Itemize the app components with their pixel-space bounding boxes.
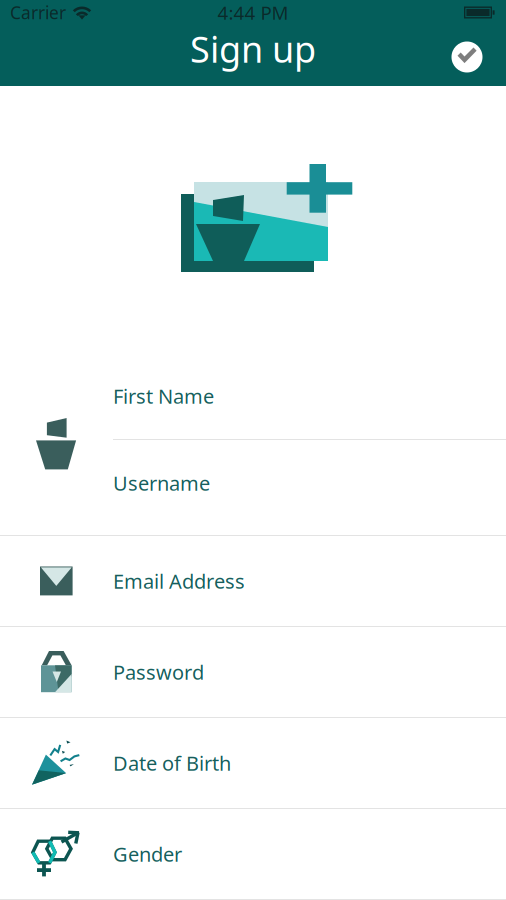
staticText: Gender bbox=[113, 841, 182, 867]
staticText: 4:44 PM bbox=[217, 0, 288, 25]
button[interactable]: Confirm sign up bbox=[445, 35, 489, 79]
staticText: Username bbox=[113, 470, 210, 496]
staticText: Date of Birth bbox=[113, 750, 231, 776]
button[interactable]: Password bbox=[0, 627, 506, 717]
button[interactable]: Email Address bbox=[0, 536, 506, 626]
button[interactable]: First Name bbox=[113, 353, 506, 439]
staticText: Email Address bbox=[113, 568, 245, 594]
staticText: Sign up bbox=[190, 25, 316, 73]
staticText: Password bbox=[113, 659, 204, 685]
button[interactable]: Username bbox=[113, 440, 506, 535]
staticText: Carrier bbox=[10, 1, 66, 24]
button[interactable]: Date of Birth bbox=[0, 718, 506, 808]
staticText: First Name bbox=[113, 383, 214, 409]
button[interactable]: Gender bbox=[0, 809, 506, 899]
